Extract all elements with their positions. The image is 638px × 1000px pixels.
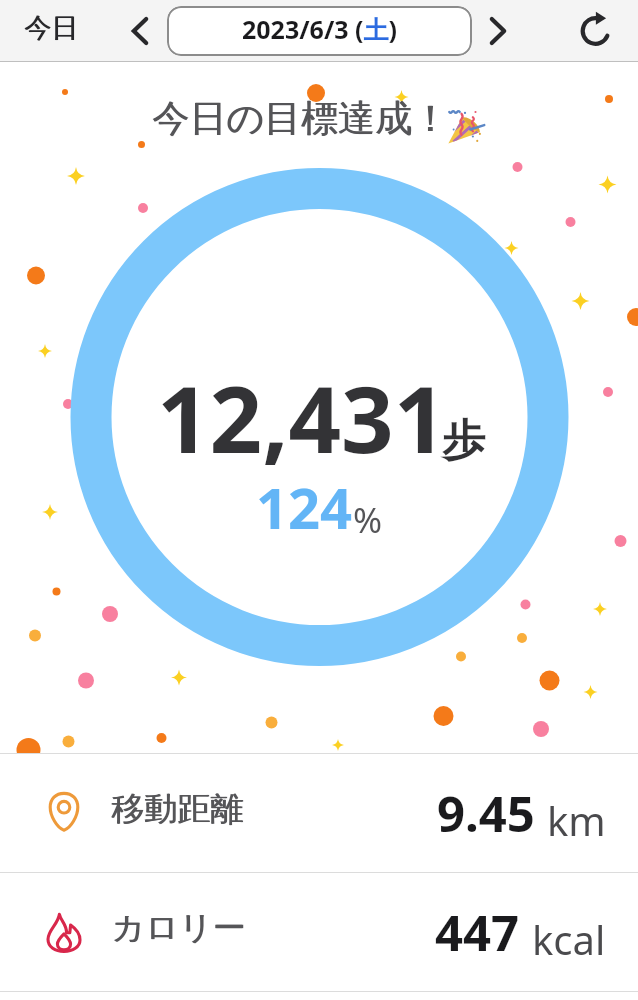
staticText: 今日 bbox=[24, 11, 78, 45]
staticText: 今日 bbox=[25, 11, 79, 45]
staticText: 12,431 bbox=[157, 355, 447, 480]
staticText: 移動距離 bbox=[111, 788, 243, 830]
staticText: 移動距離 bbox=[112, 788, 244, 830]
staticText: % bbox=[353, 496, 383, 544]
staticText: 歩 bbox=[442, 414, 485, 468]
staticText: カロリー bbox=[111, 907, 246, 949]
button[interactable]: 今日 bbox=[4, 0, 98, 62]
staticText: 447 bbox=[435, 899, 520, 966]
staticText: 9.45 bbox=[437, 780, 535, 847]
button[interactable]: Next day bbox=[468, 0, 528, 62]
button[interactable]: Previous day bbox=[110, 0, 170, 62]
button[interactable]: Refresh bbox=[564, 0, 624, 62]
staticText: 2023/6/3 (土) bbox=[242, 12, 398, 46]
button[interactable]: カロリー bbox=[0, 873, 638, 991]
staticText: km bbox=[547, 793, 606, 847]
staticText: 今日の目標達成！ bbox=[152, 95, 449, 142]
staticText: kcal bbox=[532, 912, 606, 966]
button[interactable]: 2023/6/3 (土) bbox=[167, 6, 472, 56]
staticText: カロリー bbox=[112, 907, 247, 949]
button[interactable]: 移動距離 bbox=[0, 754, 638, 872]
staticText: 今日の目標達成！ bbox=[153, 95, 450, 142]
staticText: 124 bbox=[256, 469, 353, 545]
